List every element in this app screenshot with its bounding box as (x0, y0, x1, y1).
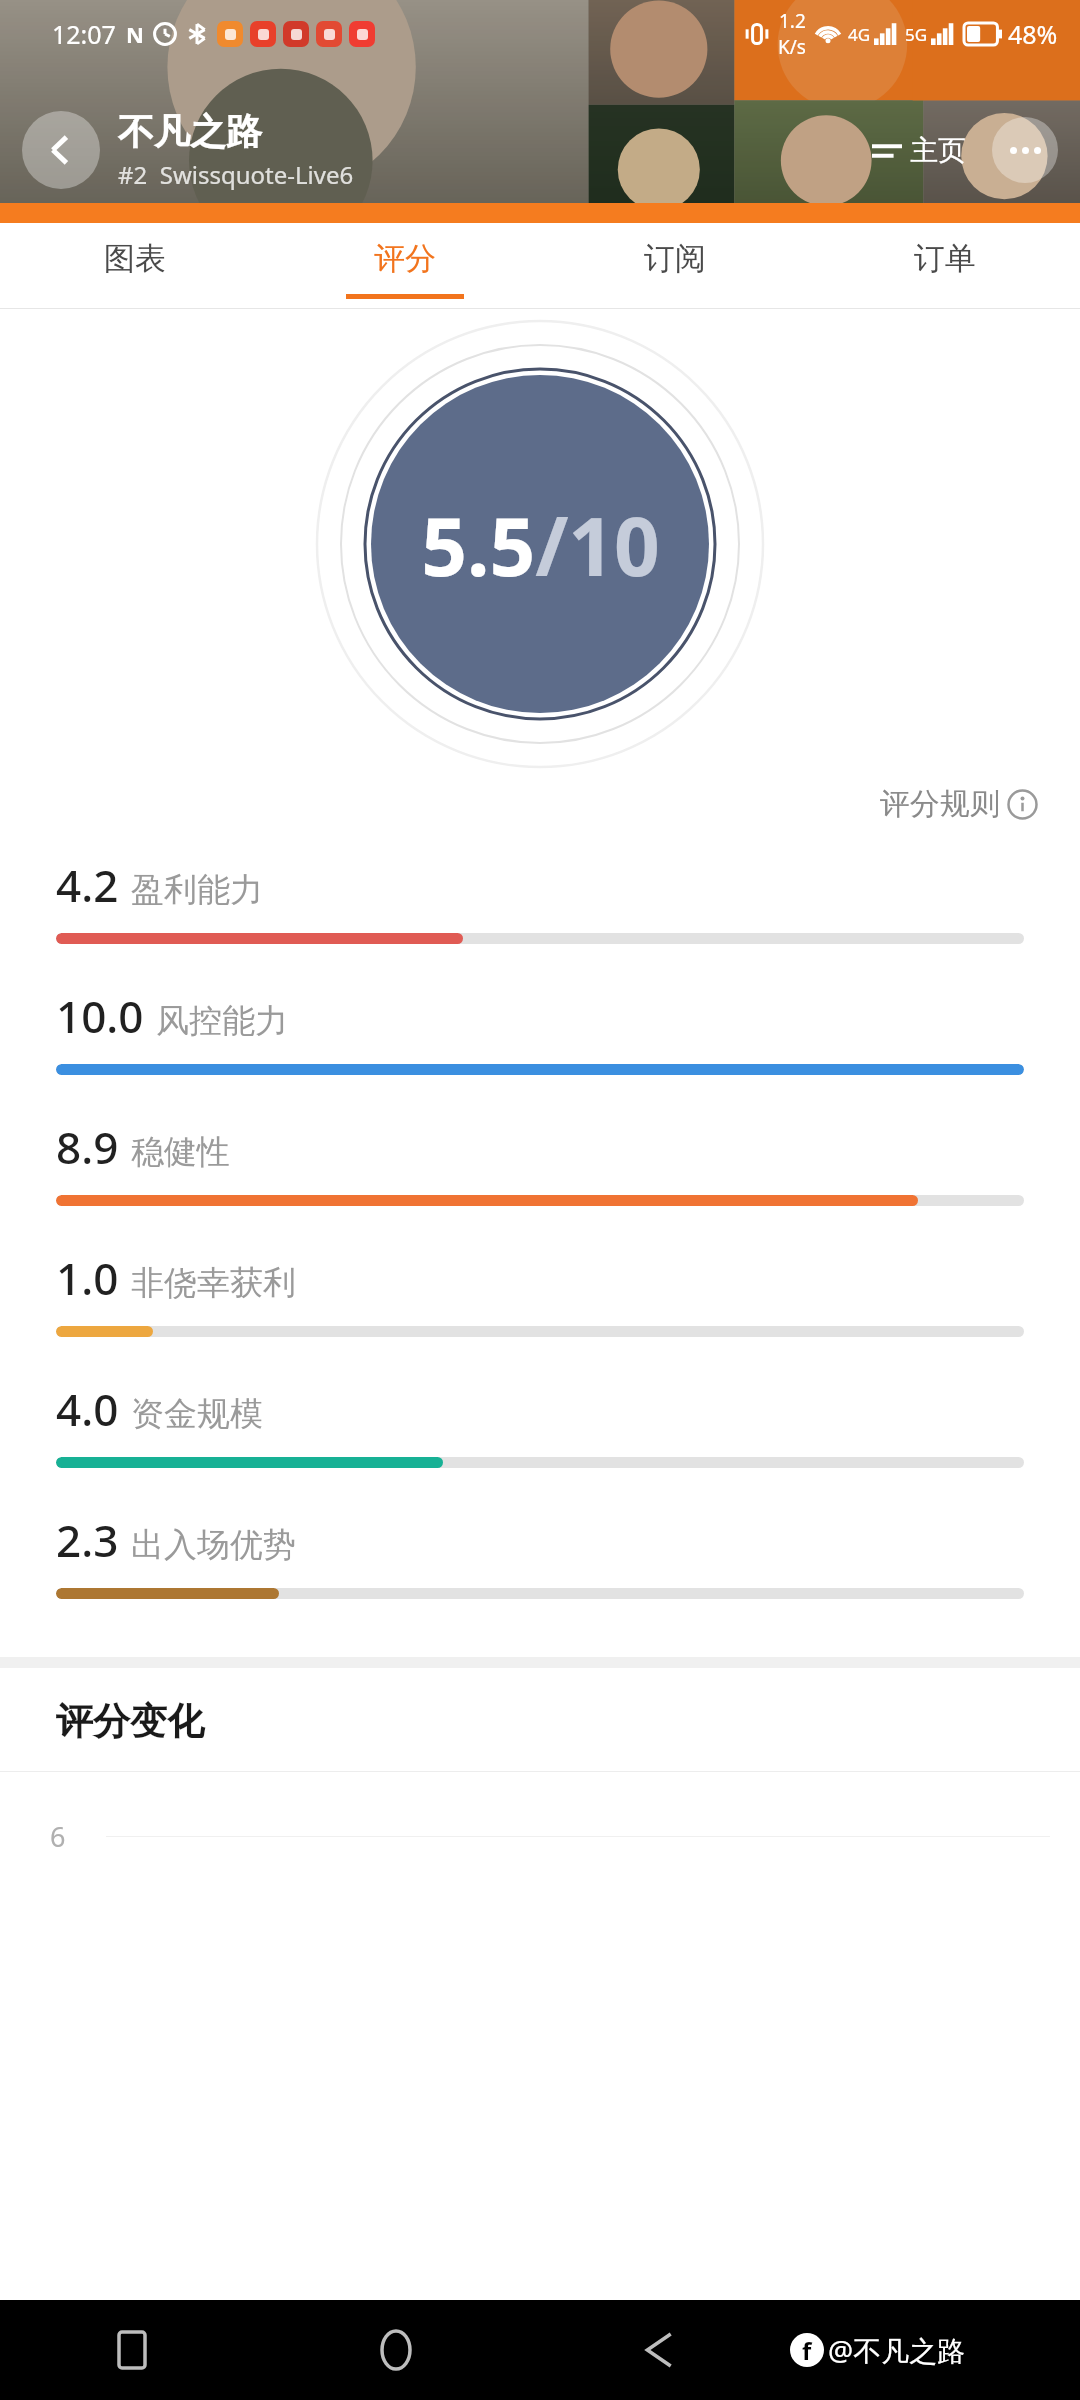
button[interactable]: 4.0 (0, 1379, 1080, 1510)
staticText: f (802, 2334, 812, 2367)
staticText: 评分 (374, 239, 436, 278)
staticText: 盈利能力 (131, 869, 263, 911)
button[interactable]: Home (264, 2300, 527, 2400)
staticText: 订阅 (644, 239, 706, 278)
button[interactable]: Back (22, 111, 100, 189)
staticText: 出入场优势 (131, 1524, 296, 1566)
button[interactable]: 图表 (0, 223, 270, 309)
staticText: 5G (905, 23, 928, 46)
button[interactable]: 4.2 (0, 855, 1080, 986)
staticText: 1.2 (779, 8, 806, 34)
button[interactable]: 订单 (810, 223, 1080, 309)
staticText: 10.0 (56, 986, 144, 1046)
staticText: 稳健性 (131, 1131, 230, 1173)
staticText: 1.0 (56, 1248, 119, 1308)
staticText: 非侥幸获利 (131, 1262, 296, 1304)
staticText: N (126, 19, 144, 49)
staticText: 5.5/10 (421, 490, 660, 599)
staticText: 不凡之路 (118, 109, 262, 154)
button[interactable]: 2.3 (0, 1510, 1080, 1641)
button[interactable]: 8.9 (0, 1117, 1080, 1248)
staticText: 评分变化 (56, 1698, 204, 1745)
staticText: #2 Swissquote-Live6 (118, 158, 354, 191)
staticText: 资金规模 (131, 1393, 263, 1435)
button[interactable]: 评分规则 (874, 779, 1044, 829)
staticText: 2.3 (56, 1510, 119, 1570)
staticText: 4.0 (56, 1379, 119, 1439)
button[interactable]: Recents (0, 2300, 264, 2400)
button[interactable]: 评分 (270, 223, 540, 309)
staticText: 4G (848, 23, 871, 46)
staticText: 8.9 (56, 1117, 119, 1177)
staticText: 6 (50, 1818, 66, 1855)
button[interactable]: 订阅 (540, 223, 810, 309)
staticText: 12:07 (52, 17, 116, 51)
button[interactable]: 10.0 (0, 986, 1080, 1117)
staticText: 订单 (914, 239, 976, 278)
staticText: K/s (778, 34, 806, 60)
button[interactable]: 1.0 (0, 1248, 1080, 1379)
staticText: 评分规则 (880, 785, 1000, 823)
staticText: 图表 (104, 239, 166, 278)
button[interactable]: Back (527, 2300, 790, 2400)
staticText: 主页 (910, 133, 966, 168)
staticText: @不凡之路 (828, 2331, 966, 2369)
button[interactable]: 主页 (866, 127, 972, 174)
button[interactable]: More options (992, 117, 1058, 183)
staticText: 4.2 (56, 855, 119, 915)
staticText: 48% (1008, 17, 1058, 51)
staticText: 风控能力 (156, 1000, 288, 1042)
